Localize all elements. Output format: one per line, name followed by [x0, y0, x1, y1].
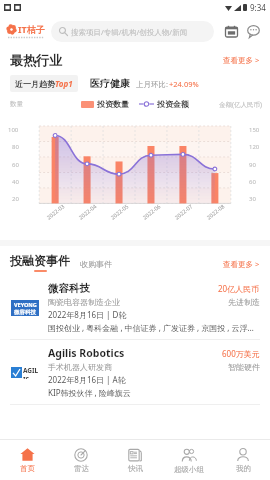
staticText: 陶瓷电容器制造企业 — [48, 297, 120, 307]
staticText: 快讯 — [128, 464, 143, 473]
staticText: 120 — [249, 143, 260, 151]
button[interactable]: 首页 — [0, 440, 54, 480]
button[interactable]: 查看更多 > — [223, 259, 260, 272]
button[interactable]: AGILIS — [0, 340, 270, 404]
staticText: 80 — [12, 143, 19, 151]
staticText: AGILIS — [23, 366, 39, 379]
staticText: 2022-07 — [173, 202, 194, 221]
staticText: 2022-04 — [77, 202, 98, 221]
staticText: 100 — [8, 126, 19, 134]
staticText: 150 — [249, 126, 260, 134]
staticText: 60 — [12, 161, 19, 169]
staticText: 医疗健康 — [90, 77, 130, 90]
staticText: 上月环比: — [136, 79, 169, 89]
staticText: 手术机器人研发商 — [48, 362, 112, 372]
button[interactable]: 我的 — [216, 440, 270, 480]
staticText: 超级小组 — [174, 465, 204, 474]
staticText: 60 — [249, 178, 256, 186]
staticText: 2022年8月16日 | D轮 — [48, 309, 127, 320]
staticText: 投资数量 — [97, 99, 129, 109]
staticText: 微容科技 — [14, 309, 36, 316]
staticText: 2022-03 — [45, 202, 66, 221]
staticText: 30 — [249, 195, 256, 203]
staticText: 首页 — [20, 464, 35, 473]
button[interactable]: VEYONG — [0, 276, 270, 339]
staticText: 40 — [12, 178, 19, 186]
staticText: 投融资事件 — [10, 253, 70, 268]
staticText: 2022年8月16日 | A轮 — [48, 374, 126, 385]
staticText: 雷达 — [74, 464, 89, 473]
staticText: 数量 — [10, 100, 23, 108]
staticText: 我的 — [236, 464, 251, 473]
button[interactable]: 快讯 — [108, 440, 162, 480]
staticText: 微容科技 — [48, 282, 90, 295]
staticText: 9:34 — [250, 2, 266, 13]
staticText: 20亿人民币 — [218, 283, 260, 294]
staticText: 90 — [249, 161, 256, 169]
button[interactable]: 超级小组 — [162, 440, 216, 480]
button[interactable]: 雷达 — [54, 440, 108, 480]
staticText: 600万美元 — [222, 348, 260, 359]
staticText: 国投创业 , 粤科金融 , 中信证券 , 广发证券 , 京国投 , 云浮… — [48, 322, 254, 333]
staticText: 查看更多 > — [223, 55, 260, 65]
staticText: 20 — [12, 195, 19, 203]
staticText: 2022-08 — [205, 202, 226, 221]
staticText: 智能硬件 — [228, 362, 260, 372]
button[interactable]: 收购事件 — [80, 259, 112, 272]
staticText: 金额(亿人民币) — [219, 100, 262, 109]
staticText: 搜索项目/专辑/机构/创投人物/新闻 — [71, 27, 188, 37]
button[interactable]: 近一月趋势 — [10, 75, 78, 92]
button[interactable]: Messages — [242, 20, 264, 42]
staticText: 2022-06 — [141, 202, 162, 221]
button[interactable]: IT桔子 — [6, 23, 45, 39]
button[interactable]: 查看更多 > — [223, 55, 260, 65]
staticText: KIP韩投伙伴 , 险峰旗云 — [48, 387, 131, 398]
staticText: +24.09% — [169, 79, 199, 89]
staticText: Agilis Robotics — [48, 346, 125, 360]
staticText: Top1 — [55, 78, 73, 89]
staticText: 2022-05 — [109, 202, 130, 221]
staticText: 最热行业 — [10, 52, 62, 68]
staticText: 近一月趋势 — [15, 79, 55, 89]
staticText: 先进制造 — [228, 297, 260, 307]
staticText: IT桔子 — [18, 23, 45, 35]
staticText: 投资金额 — [157, 99, 189, 109]
button[interactable]: 搜索项目/专辑/机构/创投人物/新闻 — [51, 21, 214, 42]
staticText: VEYONG — [14, 301, 37, 308]
button[interactable]: Calendar — [220, 20, 242, 42]
